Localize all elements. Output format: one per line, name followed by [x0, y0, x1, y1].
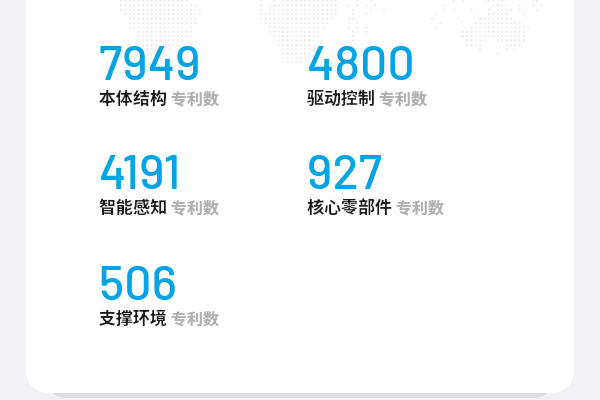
staticText: 专利数: [375, 86, 427, 109]
staticText: 智能感知: [99, 193, 167, 218]
staticText: 核心零部件: [307, 193, 392, 218]
staticText: 4191: [99, 141, 181, 199]
staticText: 驱动控制: [307, 84, 375, 109]
staticText: 7949: [99, 32, 201, 90]
staticText: 本体结构: [99, 84, 167, 109]
staticText: 927: [307, 141, 383, 199]
staticText: 专利数: [167, 306, 219, 329]
staticText: 专利数: [167, 195, 219, 218]
staticText: 专利数: [167, 86, 219, 109]
staticText: 4800: [307, 32, 415, 90]
staticText: 支撑环境: [99, 304, 167, 329]
staticText: 506: [99, 252, 177, 310]
staticText: 专利数: [392, 195, 444, 218]
